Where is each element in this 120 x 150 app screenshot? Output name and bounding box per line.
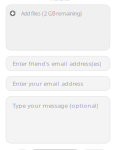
- staticText: Enter your email address: [12, 79, 83, 88]
- button[interactable]: Transfer: [32, 149, 78, 150]
- staticText: Add files (2 GB remaining): [21, 10, 82, 17]
- button[interactable]: Enter friend's email address(es): [6, 56, 110, 71]
- staticText: Type your message (optional): [12, 101, 98, 110]
- staticText: Enter friend's email address(es): [12, 59, 101, 67]
- button[interactable]: Add files (2 GB remaining): [6, 5, 110, 50]
- button[interactable]: Get a link: [84, 149, 105, 150]
- button[interactable]: Type your message (optional): [6, 96, 110, 143]
- button[interactable]: Enter your email address: [6, 76, 110, 91]
- button[interactable]: Add another file: [17, 149, 27, 150]
- staticText: Transfer: [49, 0, 70, 2]
